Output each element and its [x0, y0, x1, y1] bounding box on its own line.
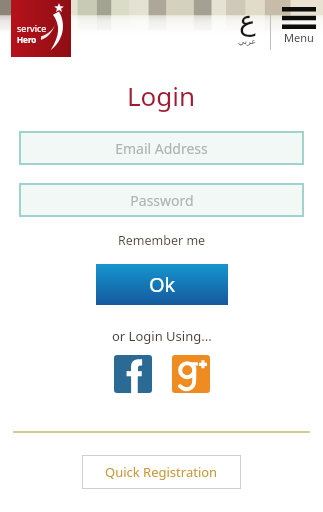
button[interactable]: Email Address: [19, 131, 304, 165]
button[interactable]: Remember me: [118, 232, 206, 249]
staticText: service: [17, 22, 47, 34]
staticText: ع: [239, 4, 256, 37]
button[interactable]: Service Hero home: [11, 0, 71, 57]
button[interactable]: Quick Registration: [82, 455, 241, 489]
button[interactable]: Switch to Arabic: [228, 4, 266, 46]
staticText: Quick Registration: [105, 463, 218, 481]
staticText: Login: [127, 78, 196, 113]
staticText: Hero: [17, 34, 37, 45]
staticText: عربي: [238, 37, 257, 46]
staticText: Password: [130, 191, 194, 210]
staticText: Ok: [149, 271, 176, 298]
button[interactable]: Menu: [277, 7, 321, 45]
button[interactable]: Login with Facebook: [114, 355, 152, 393]
staticText: Menu: [284, 30, 314, 45]
button[interactable]: Ok: [96, 264, 228, 305]
staticText: Email Address: [115, 139, 208, 158]
button[interactable]: Password: [19, 183, 304, 217]
button[interactable]: Login with Google Plus: [172, 355, 210, 393]
staticText: or Login Using...: [112, 327, 212, 345]
